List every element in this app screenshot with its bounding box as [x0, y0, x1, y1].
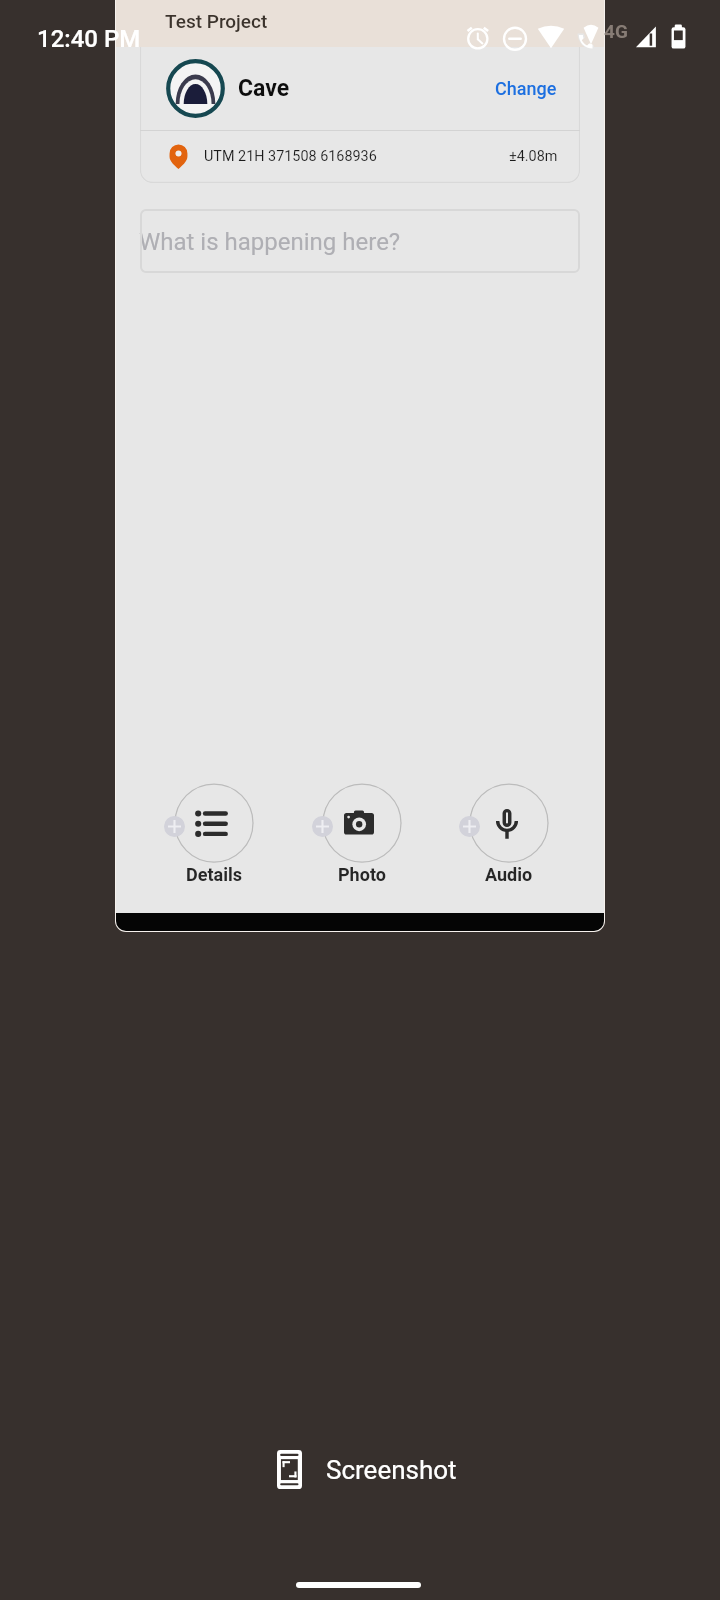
staticText: Photo: [338, 864, 386, 885]
staticText: Details: [186, 864, 242, 885]
staticText: 4G: [604, 20, 628, 42]
staticText: Audio: [485, 864, 533, 885]
staticText: What is happening here?: [139, 228, 401, 256]
button[interactable]: Details: [158, 777, 270, 889]
staticText: Cave: [238, 75, 290, 102]
button[interactable]: Change: [495, 78, 557, 99]
staticText: UTM 21H 371508 6168936: [204, 148, 377, 165]
button[interactable]: Screenshot: [277, 1450, 457, 1489]
button[interactable]: Photo: [306, 777, 418, 889]
staticText: Change: [495, 78, 557, 99]
button[interactable]: Audio: [453, 777, 565, 889]
staticText: Screenshot: [326, 1455, 457, 1485]
staticText: ±4.08m: [509, 148, 558, 165]
staticText: Test Project: [165, 10, 268, 32]
button[interactable]: Cave: [140, 47, 580, 130]
button[interactable]: What is happening here?: [140, 209, 580, 273]
staticText: 12:40 PM: [37, 25, 141, 53]
